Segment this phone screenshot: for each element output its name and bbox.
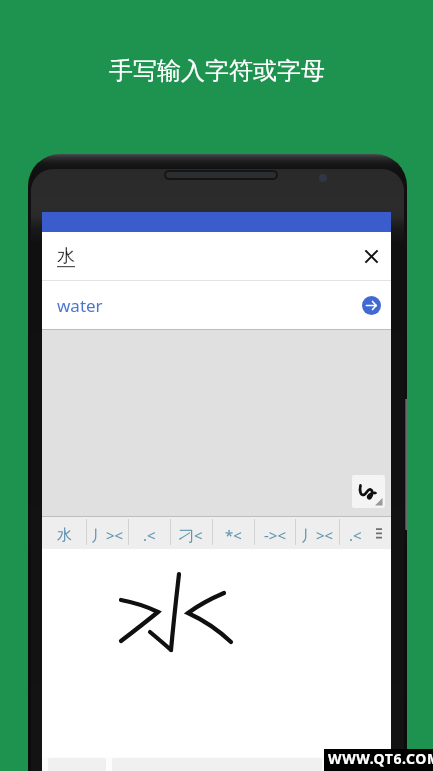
staticText: 刁< bbox=[179, 525, 203, 545]
staticText: .< bbox=[143, 525, 156, 545]
button[interactable]: Handwriting input mode bbox=[352, 475, 385, 508]
button[interactable]: .< bbox=[128, 519, 170, 551]
staticText: WWW.QT6.COM bbox=[328, 749, 433, 768]
button[interactable]: ->< bbox=[254, 519, 295, 551]
button[interactable]: Clear text bbox=[349, 234, 393, 278]
staticText: 丿>< bbox=[91, 525, 124, 545]
staticText: 丿>< bbox=[301, 525, 334, 545]
button[interactable]: 水 bbox=[57, 245, 75, 268]
staticText: *< bbox=[225, 525, 242, 545]
staticText: 手写输入字符或字母 bbox=[109, 56, 325, 86]
staticText: water bbox=[57, 294, 103, 317]
staticText: .< bbox=[349, 525, 362, 545]
button[interactable]: *< bbox=[212, 519, 254, 551]
staticText: ->< bbox=[264, 525, 286, 545]
staticText: 水 bbox=[57, 526, 72, 545]
button[interactable]: 丿>< bbox=[295, 519, 339, 551]
staticText: 水 bbox=[57, 245, 75, 268]
button[interactable]: 水 bbox=[42, 519, 86, 551]
button[interactable]: 丿>< bbox=[86, 519, 128, 551]
button[interactable]: More candidates bbox=[367, 517, 391, 549]
button[interactable]: 刁< bbox=[170, 519, 212, 551]
button[interactable]: water bbox=[42, 281, 391, 329]
button[interactable]: .< bbox=[339, 519, 372, 551]
